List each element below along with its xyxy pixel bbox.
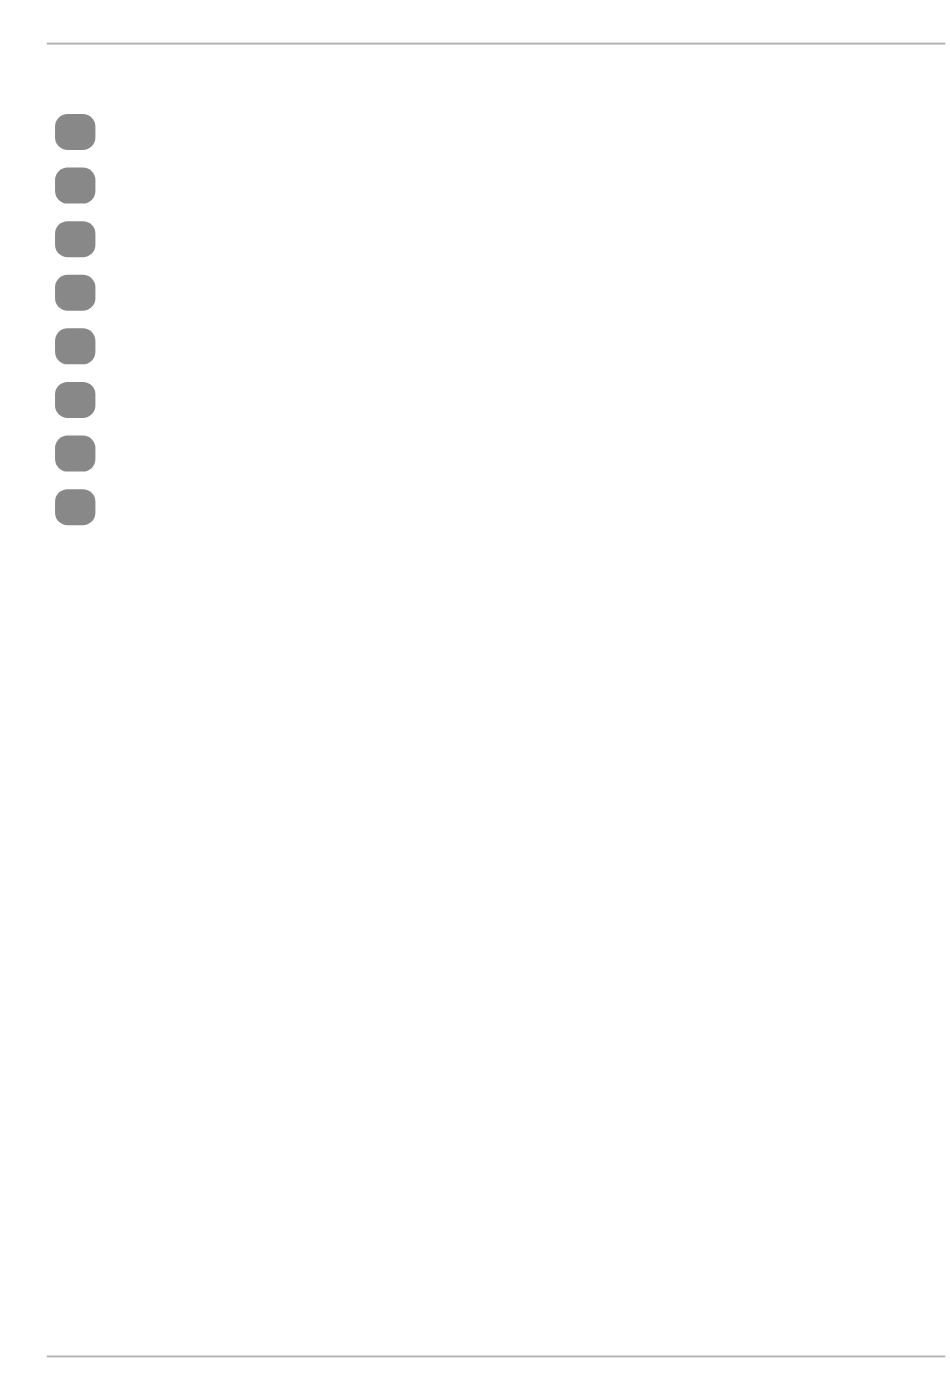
button[interactable]: List item 3 — [0, 212, 950, 266]
button[interactable]: List item 4 — [0, 266, 950, 320]
button[interactable]: List item 7 — [0, 427, 950, 481]
button[interactable]: List item 8 — [0, 480, 950, 534]
button[interactable]: List item 1 — [0, 105, 950, 159]
button[interactable]: List item 5 — [0, 320, 950, 374]
button[interactable]: List item 2 — [0, 159, 950, 213]
button[interactable]: List item 6 — [0, 373, 950, 427]
